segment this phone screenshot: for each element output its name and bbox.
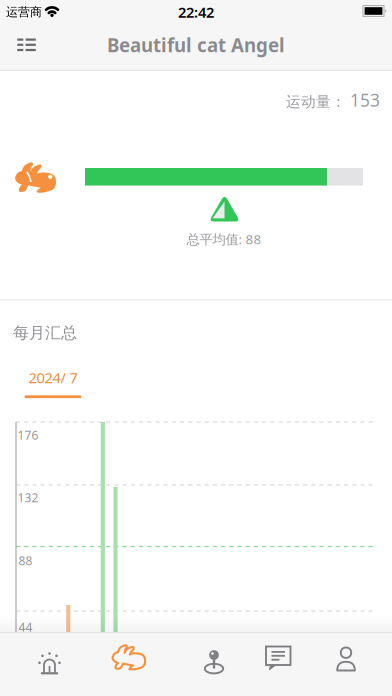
staticText: 2024/ 7 xyxy=(28,368,77,387)
button[interactable]: Profile xyxy=(316,636,376,686)
button[interactable]: Menu xyxy=(10,30,46,60)
staticText: 176 xyxy=(17,427,38,443)
staticText: 153 xyxy=(350,88,380,111)
staticText: 44 xyxy=(18,619,32,635)
staticText: 88 xyxy=(18,552,32,568)
staticText: 132 xyxy=(17,489,38,505)
staticText: 总平均值: 88 xyxy=(186,230,261,248)
button[interactable]: Activity xyxy=(99,636,159,686)
button[interactable]: 2024/ 7 xyxy=(24,368,81,398)
staticText: 22:42 xyxy=(178,2,214,22)
button[interactable]: Location xyxy=(184,636,244,686)
button[interactable]: Alerts xyxy=(19,636,79,686)
staticText: 运动量： xyxy=(286,93,346,111)
staticText: 每月汇总 xyxy=(13,323,77,343)
staticText: 运营商 xyxy=(6,5,42,19)
staticText: Beautiful cat Angel xyxy=(107,33,285,57)
button[interactable]: Messages xyxy=(248,636,308,686)
